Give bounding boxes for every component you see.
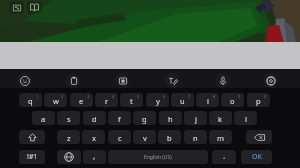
staticText: q — [28, 96, 33, 106]
button[interactable]: y — [146, 93, 169, 107]
staticText: x — [92, 133, 96, 143]
button[interactable]: v — [133, 130, 156, 144]
staticText: 4 — [112, 94, 115, 99]
staticText: 2 — [61, 94, 64, 99]
button[interactable]: Space — [108, 150, 208, 164]
button[interactable]: Handwriting — [165, 73, 180, 88]
button[interactable]: k — [209, 111, 232, 125]
staticText: , — [93, 150, 96, 161]
button[interactable]: Stickers — [115, 73, 130, 88]
staticText: !#1 — [27, 152, 38, 162]
button[interactable]: o — [221, 93, 244, 107]
button[interactable]: , — [83, 150, 106, 164]
button[interactable]: p — [247, 93, 270, 107]
button[interactable]: u — [171, 93, 194, 107]
button[interactable]: m — [209, 130, 232, 144]
staticText: s — [67, 114, 71, 124]
button[interactable]: n — [184, 130, 207, 144]
staticText: n — [193, 133, 198, 143]
button[interactable]: OK — [241, 150, 272, 164]
staticText: 5 — [137, 94, 140, 99]
button[interactable]: . — [212, 150, 236, 164]
staticText: c — [118, 133, 122, 143]
staticText: 6 — [163, 94, 166, 99]
staticText: w — [53, 96, 59, 106]
staticText: k — [218, 114, 223, 124]
button[interactable]: j — [184, 111, 207, 125]
button[interactable]: w — [44, 93, 67, 107]
staticText: a — [41, 114, 46, 124]
staticText: j — [195, 114, 197, 124]
button[interactable]: h — [159, 111, 182, 125]
button[interactable]: z — [57, 130, 80, 144]
button[interactable]: Fullscreen — [9, 1, 24, 14]
staticText: 0 — [264, 94, 267, 99]
staticText: 9 — [238, 94, 241, 99]
staticText: h — [168, 114, 173, 124]
button[interactable]: !#1 — [19, 150, 45, 164]
staticText: f — [118, 114, 121, 124]
button[interactable]: Book — [27, 1, 42, 14]
staticText: d — [92, 114, 97, 124]
staticText: OK — [252, 152, 262, 162]
staticText: 8 — [213, 94, 216, 99]
staticText: e — [79, 96, 84, 106]
staticText: t — [130, 96, 133, 106]
button[interactable]: Emoji — [17, 73, 32, 88]
button[interactable]: Settings — [263, 73, 278, 88]
button[interactable]: i — [196, 93, 219, 107]
staticText: m — [217, 133, 225, 143]
button[interactable]: c — [108, 130, 131, 144]
staticText: 1 — [36, 94, 39, 99]
staticText: p — [256, 96, 261, 106]
button[interactable]: l — [234, 111, 257, 125]
staticText: English (US) — [144, 154, 172, 161]
staticText: i — [207, 96, 209, 106]
staticText: o — [230, 96, 235, 106]
button[interactable]: Clipboard — [66, 73, 81, 88]
button[interactable]: q — [19, 93, 42, 107]
staticText: l — [245, 114, 247, 124]
button[interactable]: g — [133, 111, 156, 125]
staticText: 3 — [87, 94, 90, 99]
button[interactable]: e — [70, 93, 93, 107]
staticText: 7 — [188, 94, 191, 99]
button[interactable]: f — [108, 111, 131, 125]
staticText: b — [167, 133, 172, 143]
staticText: v — [143, 133, 147, 143]
button[interactable]: Voice input — [215, 73, 230, 88]
button[interactable]: x — [82, 130, 105, 144]
staticText: r — [105, 96, 109, 106]
staticText: . — [223, 150, 226, 161]
button[interactable]: b — [158, 130, 181, 144]
staticText: z — [67, 133, 71, 143]
button[interactable]: d — [83, 111, 106, 125]
button[interactable]: s — [57, 111, 80, 125]
staticText: u — [180, 96, 185, 106]
button[interactable]: a — [32, 111, 55, 125]
button[interactable]: r — [95, 93, 118, 107]
button[interactable]: Backspace — [246, 130, 272, 144]
staticText: g — [142, 114, 147, 124]
staticText: y — [156, 96, 160, 106]
button[interactable]: Shift — [19, 130, 45, 144]
button[interactable]: Change language — [57, 150, 81, 164]
button[interactable]: t — [120, 93, 143, 107]
